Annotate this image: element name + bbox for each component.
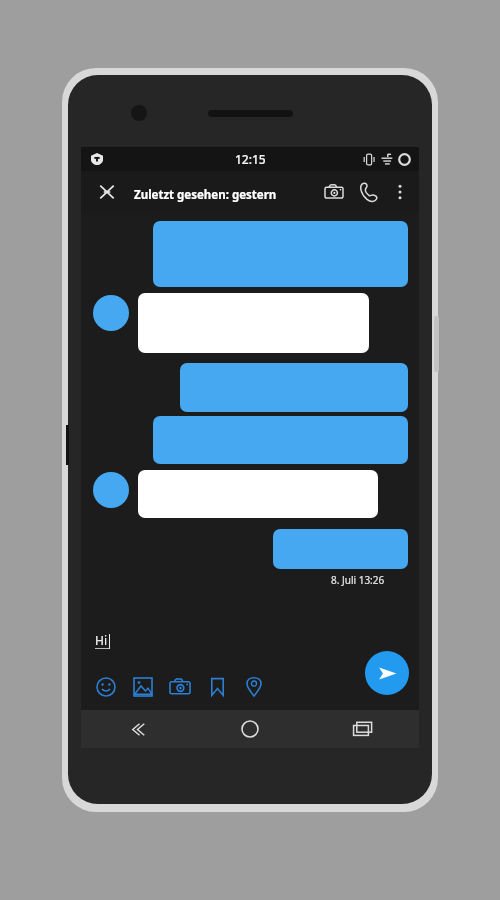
button[interactable] [273, 529, 408, 569]
button[interactable]: Camera [317, 175, 351, 209]
button[interactable]: Recent apps [306, 710, 419, 748]
button[interactable]: Gallery [128, 672, 158, 702]
button[interactable]: Close [92, 177, 122, 207]
button[interactable] [153, 221, 408, 287]
button[interactable] [138, 470, 378, 518]
button[interactable] [138, 293, 369, 353]
button[interactable]: Camera [165, 672, 195, 702]
staticText: Zuletzt gesehen: gestern [134, 187, 277, 203]
button[interactable]: Home [193, 710, 306, 748]
button[interactable]: Call [351, 175, 385, 209]
button[interactable] [180, 363, 408, 412]
staticText: Hi [95, 632, 107, 648]
button[interactable]: Send [365, 651, 409, 695]
button[interactable]: Location [239, 672, 269, 702]
button[interactable]: Contact avatar [93, 295, 129, 331]
button[interactable]: More options [385, 177, 415, 207]
button[interactable]: Contact avatar [93, 472, 129, 508]
button[interactable]: Bookmark [202, 672, 232, 702]
staticText: 12:15 [235, 151, 266, 167]
button[interactable]: Back [81, 710, 193, 748]
button[interactable]: Emoji [91, 672, 121, 702]
button[interactable] [153, 416, 408, 464]
staticText: 8. Juli 13:26 [331, 573, 385, 587]
